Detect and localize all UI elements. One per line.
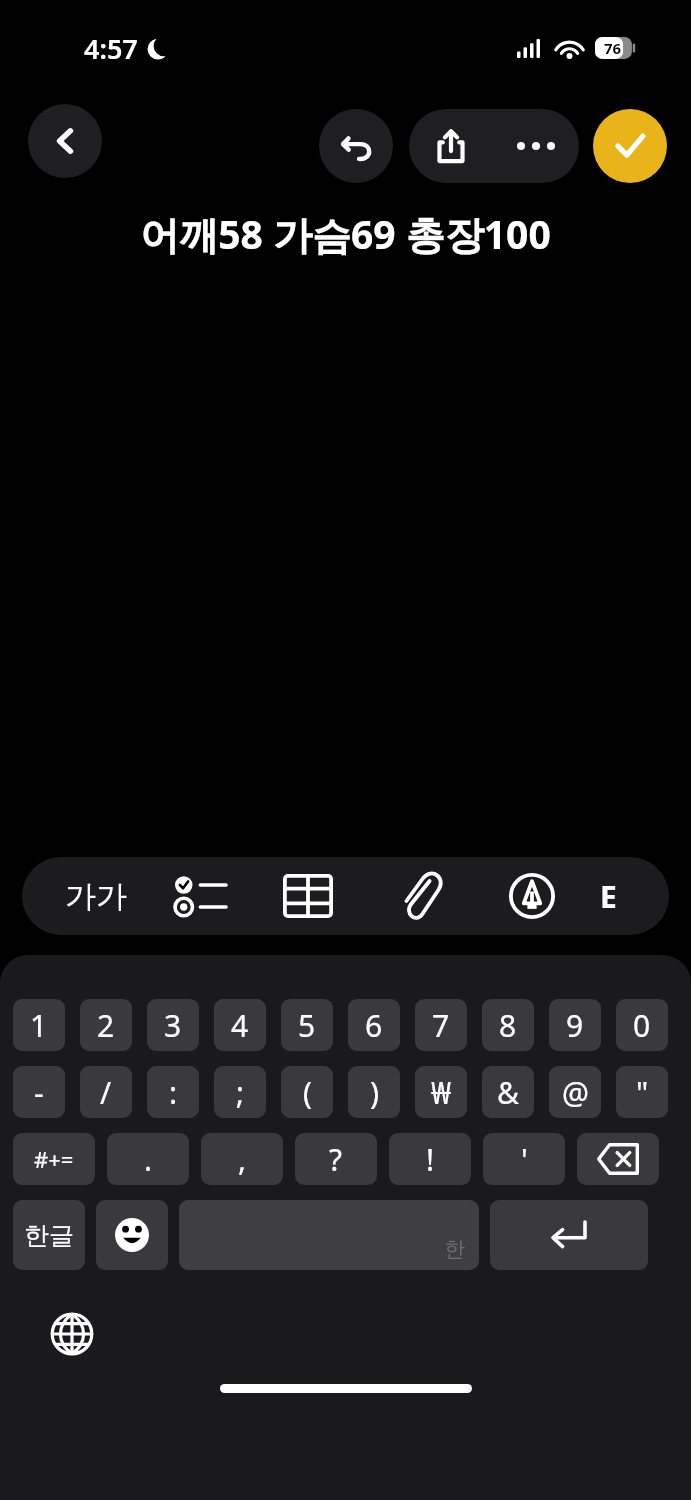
staticText: 9 <box>566 1005 584 1046</box>
staticText: ₩ <box>431 1072 452 1113</box>
button[interactable]: 7 <box>415 999 467 1051</box>
staticText: 0 <box>633 1005 651 1046</box>
button[interactable]: 3 <box>147 999 199 1051</box>
button[interactable]: , <box>201 1133 283 1185</box>
button[interactable]: " <box>616 1066 668 1118</box>
staticText: 한글 <box>24 1220 74 1251</box>
button[interactable]: Back <box>28 104 102 178</box>
button[interactable]: @ <box>549 1066 601 1118</box>
button[interactable]: Undo <box>319 109 393 183</box>
button[interactable]: ₩ <box>415 1066 467 1118</box>
staticText: , <box>238 1139 247 1180</box>
button[interactable]: Done <box>593 109 667 183</box>
staticText: 3 <box>164 1005 182 1046</box>
button[interactable]: ' <box>483 1133 565 1185</box>
button[interactable]: Checklist <box>148 857 252 935</box>
button[interactable]: 가가 <box>44 857 148 935</box>
button[interactable]: Attach <box>364 857 476 935</box>
staticText: ? <box>329 1139 343 1180</box>
staticText: ( <box>303 1072 312 1113</box>
button[interactable]: #+= <box>13 1133 95 1185</box>
staticText: @ <box>562 1072 589 1113</box>
button[interactable]: Switch keyboard <box>44 1306 100 1362</box>
button[interactable]: 5 <box>281 999 333 1051</box>
staticText: 76 <box>604 38 622 58</box>
staticText: 한 <box>444 1236 465 1262</box>
staticText: ' <box>521 1139 528 1180</box>
button[interactable]: & <box>482 1066 534 1118</box>
staticText: 가가 <box>65 877 127 916</box>
staticText: ! <box>426 1139 435 1180</box>
button[interactable]: - <box>13 1066 65 1118</box>
staticText: 어깨58 가슴69 총장100 <box>140 207 551 260</box>
staticText: 7 <box>432 1005 450 1046</box>
button[interactable]: ! <box>389 1133 471 1185</box>
button[interactable]: 한글 <box>13 1200 85 1270</box>
button[interactable]: Return <box>490 1200 648 1270</box>
staticText: 4 <box>231 1005 249 1046</box>
button[interactable]: 6 <box>348 999 400 1051</box>
staticText: E <box>600 876 617 917</box>
button[interactable]: Share <box>409 109 493 183</box>
button[interactable]: 2 <box>80 999 132 1051</box>
button[interactable]: 8 <box>482 999 534 1051</box>
button[interactable]: Emoji <box>96 1200 168 1270</box>
button[interactable]: / <box>80 1066 132 1118</box>
staticText: & <box>497 1072 519 1113</box>
staticText: 4:57 <box>84 30 138 67</box>
staticText: ) <box>370 1072 379 1113</box>
button[interactable]: More options <box>493 109 579 183</box>
staticText: 8 <box>499 1005 517 1046</box>
staticText: / <box>100 1072 112 1113</box>
button[interactable]: . <box>107 1133 189 1185</box>
button[interactable]: 0 <box>616 999 668 1051</box>
staticText: : <box>169 1072 178 1113</box>
staticText: 1 <box>30 1005 48 1046</box>
staticText: 2 <box>97 1005 115 1046</box>
button[interactable]: ( <box>281 1066 333 1118</box>
button[interactable]: 1 <box>13 999 65 1051</box>
staticText: ; <box>236 1072 245 1113</box>
staticText: - <box>34 1072 44 1113</box>
button[interactable]: ) <box>348 1066 400 1118</box>
button[interactable]: Backspace <box>577 1133 659 1185</box>
button[interactable]: 4 <box>214 999 266 1051</box>
staticText: 5 <box>298 1005 316 1046</box>
button[interactable]: Markup <box>476 857 588 935</box>
button[interactable]: Space <box>179 1200 479 1270</box>
staticText: #+= <box>34 1144 74 1174</box>
button[interactable]: Table <box>252 857 364 935</box>
staticText: " <box>636 1072 649 1113</box>
button[interactable]: ? <box>295 1133 377 1185</box>
button[interactable]: ; <box>214 1066 266 1118</box>
button[interactable]: E <box>588 857 628 935</box>
staticText: 6 <box>365 1005 383 1046</box>
button[interactable]: 9 <box>549 999 601 1051</box>
button[interactable]: : <box>147 1066 199 1118</box>
staticText: . <box>144 1139 153 1180</box>
